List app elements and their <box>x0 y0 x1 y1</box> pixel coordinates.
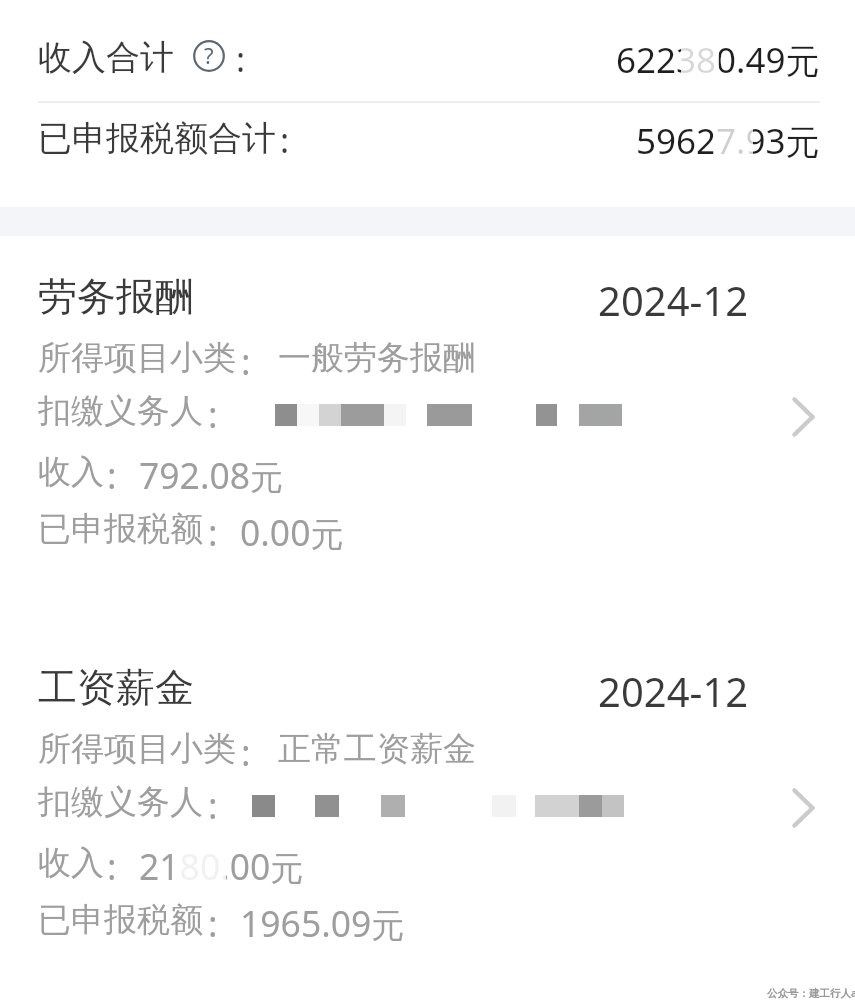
staticText: : <box>236 36 246 82</box>
staticText: : <box>107 451 117 499</box>
staticText: 2180.00元 <box>139 842 304 890</box>
button[interactable]: 查看详情 <box>776 384 830 450</box>
staticText: 0.00元 <box>240 508 344 556</box>
staticText: : <box>107 842 117 890</box>
staticText: 已申报税额合计 <box>38 117 276 160</box>
staticText: 已申报税额 <box>38 508 203 550</box>
staticText: 所得项目小类 <box>38 728 236 770</box>
button[interactable]: 说明 <box>193 40 225 72</box>
staticText: 所得项目小类 <box>38 337 236 379</box>
staticText: : <box>241 337 251 385</box>
staticText: 扣缴义务人 <box>38 390 203 432</box>
staticText: : <box>208 781 218 829</box>
staticText: 已申报税额 <box>38 899 203 941</box>
staticText: 1965.09元 <box>240 899 405 947</box>
staticText: : <box>241 728 251 776</box>
staticText: 公众号：建工行人a <box>767 986 855 1000</box>
staticText: 59627.93元 <box>636 117 820 165</box>
button[interactable]: 劳务报酬 <box>0 266 855 566</box>
staticText: 792.08元 <box>139 451 284 499</box>
staticText: : <box>208 390 218 438</box>
staticText: 劳务报酬 <box>38 272 194 321</box>
staticText: : <box>208 508 218 556</box>
staticText: 622380.49元 <box>616 36 820 84</box>
staticText: 收入 <box>38 451 104 493</box>
staticText: 扣缴义务人 <box>38 781 203 823</box>
button[interactable]: 已申报税额合计 <box>0 102 855 174</box>
staticText: 工资薪金 <box>38 663 194 712</box>
staticText: ? <box>204 40 214 70</box>
button[interactable]: 查看详情 <box>776 775 830 841</box>
staticText: : <box>208 899 218 947</box>
staticText: : <box>280 117 290 163</box>
staticText: 一般劳务报酬 <box>278 337 476 379</box>
button[interactable]: 收入合计 <box>0 20 855 92</box>
staticText: 2024-12 <box>598 273 749 327</box>
staticText: 正常工资薪金 <box>278 728 476 770</box>
staticText: 收入合计 <box>38 36 174 79</box>
staticText: 收入 <box>38 842 104 884</box>
staticText: 2024-12 <box>598 664 749 718</box>
button[interactable]: 工资薪金 <box>0 657 855 957</box>
